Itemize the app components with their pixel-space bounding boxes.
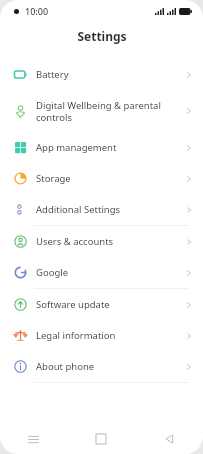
button[interactable]: Recent apps <box>0 424 67 454</box>
staticText: Legal information <box>36 329 186 342</box>
button[interactable]: Users & accounts <box>0 226 203 257</box>
staticText: Settings <box>77 28 127 44</box>
staticText: 10:00 <box>25 5 49 17</box>
button[interactable]: Back <box>135 424 203 454</box>
staticText: Users & accounts <box>36 235 186 248</box>
button[interactable]: Google <box>0 257 203 288</box>
button[interactable]: App management <box>0 132 203 163</box>
button[interactable]: Digital Wellbeing & parental controls <box>0 90 203 132</box>
button[interactable]: About phone <box>0 351 203 382</box>
button[interactable]: Battery <box>0 59 203 90</box>
button[interactable]: Storage <box>0 163 203 194</box>
staticText: Digital Wellbeing & parental controls <box>36 99 186 124</box>
button[interactable]: Legal information <box>0 320 203 351</box>
button[interactable]: Home <box>67 424 135 454</box>
button[interactable]: Software update <box>0 289 203 320</box>
staticText: App management <box>36 141 186 154</box>
staticText: Battery <box>36 68 186 81</box>
staticText: Additional Settings <box>36 203 186 216</box>
staticText: Google <box>36 266 186 279</box>
staticText: Storage <box>36 172 186 185</box>
button[interactable]: Additional Settings <box>0 194 203 225</box>
staticText: Software update <box>36 298 186 311</box>
staticText: About phone <box>36 360 186 373</box>
